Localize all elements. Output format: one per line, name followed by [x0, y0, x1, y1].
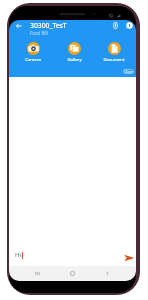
staticText: Hi: [15, 251, 21, 259]
staticText: Close: [124, 69, 134, 74]
staticText: Gallery: [67, 56, 82, 62]
staticText: Document: [103, 56, 125, 62]
button[interactable]: Recent apps: [31, 267, 44, 280]
button[interactable]: Info: [124, 20, 135, 31]
button[interactable]: Back: [101, 267, 114, 280]
staticText: 30300_TesT: [30, 21, 67, 30]
button[interactable]: Attach file: [110, 20, 121, 31]
staticText: Food Bill: [30, 30, 48, 36]
button[interactable]: Document: [102, 42, 126, 62]
button[interactable]: Back: [13, 20, 25, 32]
button[interactable]: Close: [123, 69, 134, 74]
button[interactable]: Camera: [21, 42, 45, 62]
button[interactable]: Send: [123, 252, 135, 264]
button[interactable]: Home: [66, 267, 79, 280]
staticText: Camera: [25, 56, 41, 62]
button[interactable]: Gallery: [62, 42, 86, 62]
